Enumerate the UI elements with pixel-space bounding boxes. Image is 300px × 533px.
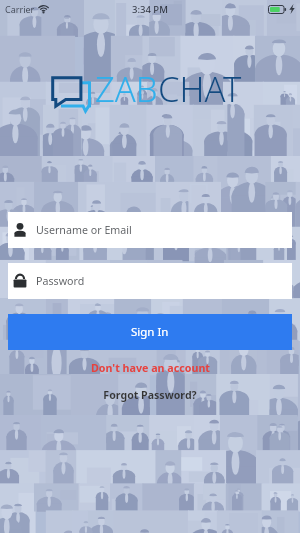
staticText: 3:34 PM: [132, 3, 168, 16]
other: Wi-Fi signal: [39, 5, 48, 14]
button[interactable]: Password: [8, 263, 292, 299]
button[interactable]: Forgot Password?: [99, 388, 201, 402]
other: ZabChat logo: [52, 73, 90, 111]
other: Password: [12, 273, 28, 289]
staticText: Password: [36, 274, 85, 289]
staticText: Sign In: [131, 324, 169, 340]
other: Battery: [268, 5, 287, 14]
staticText: Carrier: [5, 3, 35, 15]
staticText: ZAB: [95, 65, 158, 112]
staticText: CHAT: [158, 65, 242, 112]
button[interactable]: Username: [8, 212, 292, 248]
other: Username: [12, 222, 28, 238]
other: Charging: [289, 4, 295, 14]
button[interactable]: Sign In: [8, 314, 292, 350]
button[interactable]: Don't have an account: [87, 361, 214, 376]
staticText: Username or Email: [36, 223, 132, 238]
